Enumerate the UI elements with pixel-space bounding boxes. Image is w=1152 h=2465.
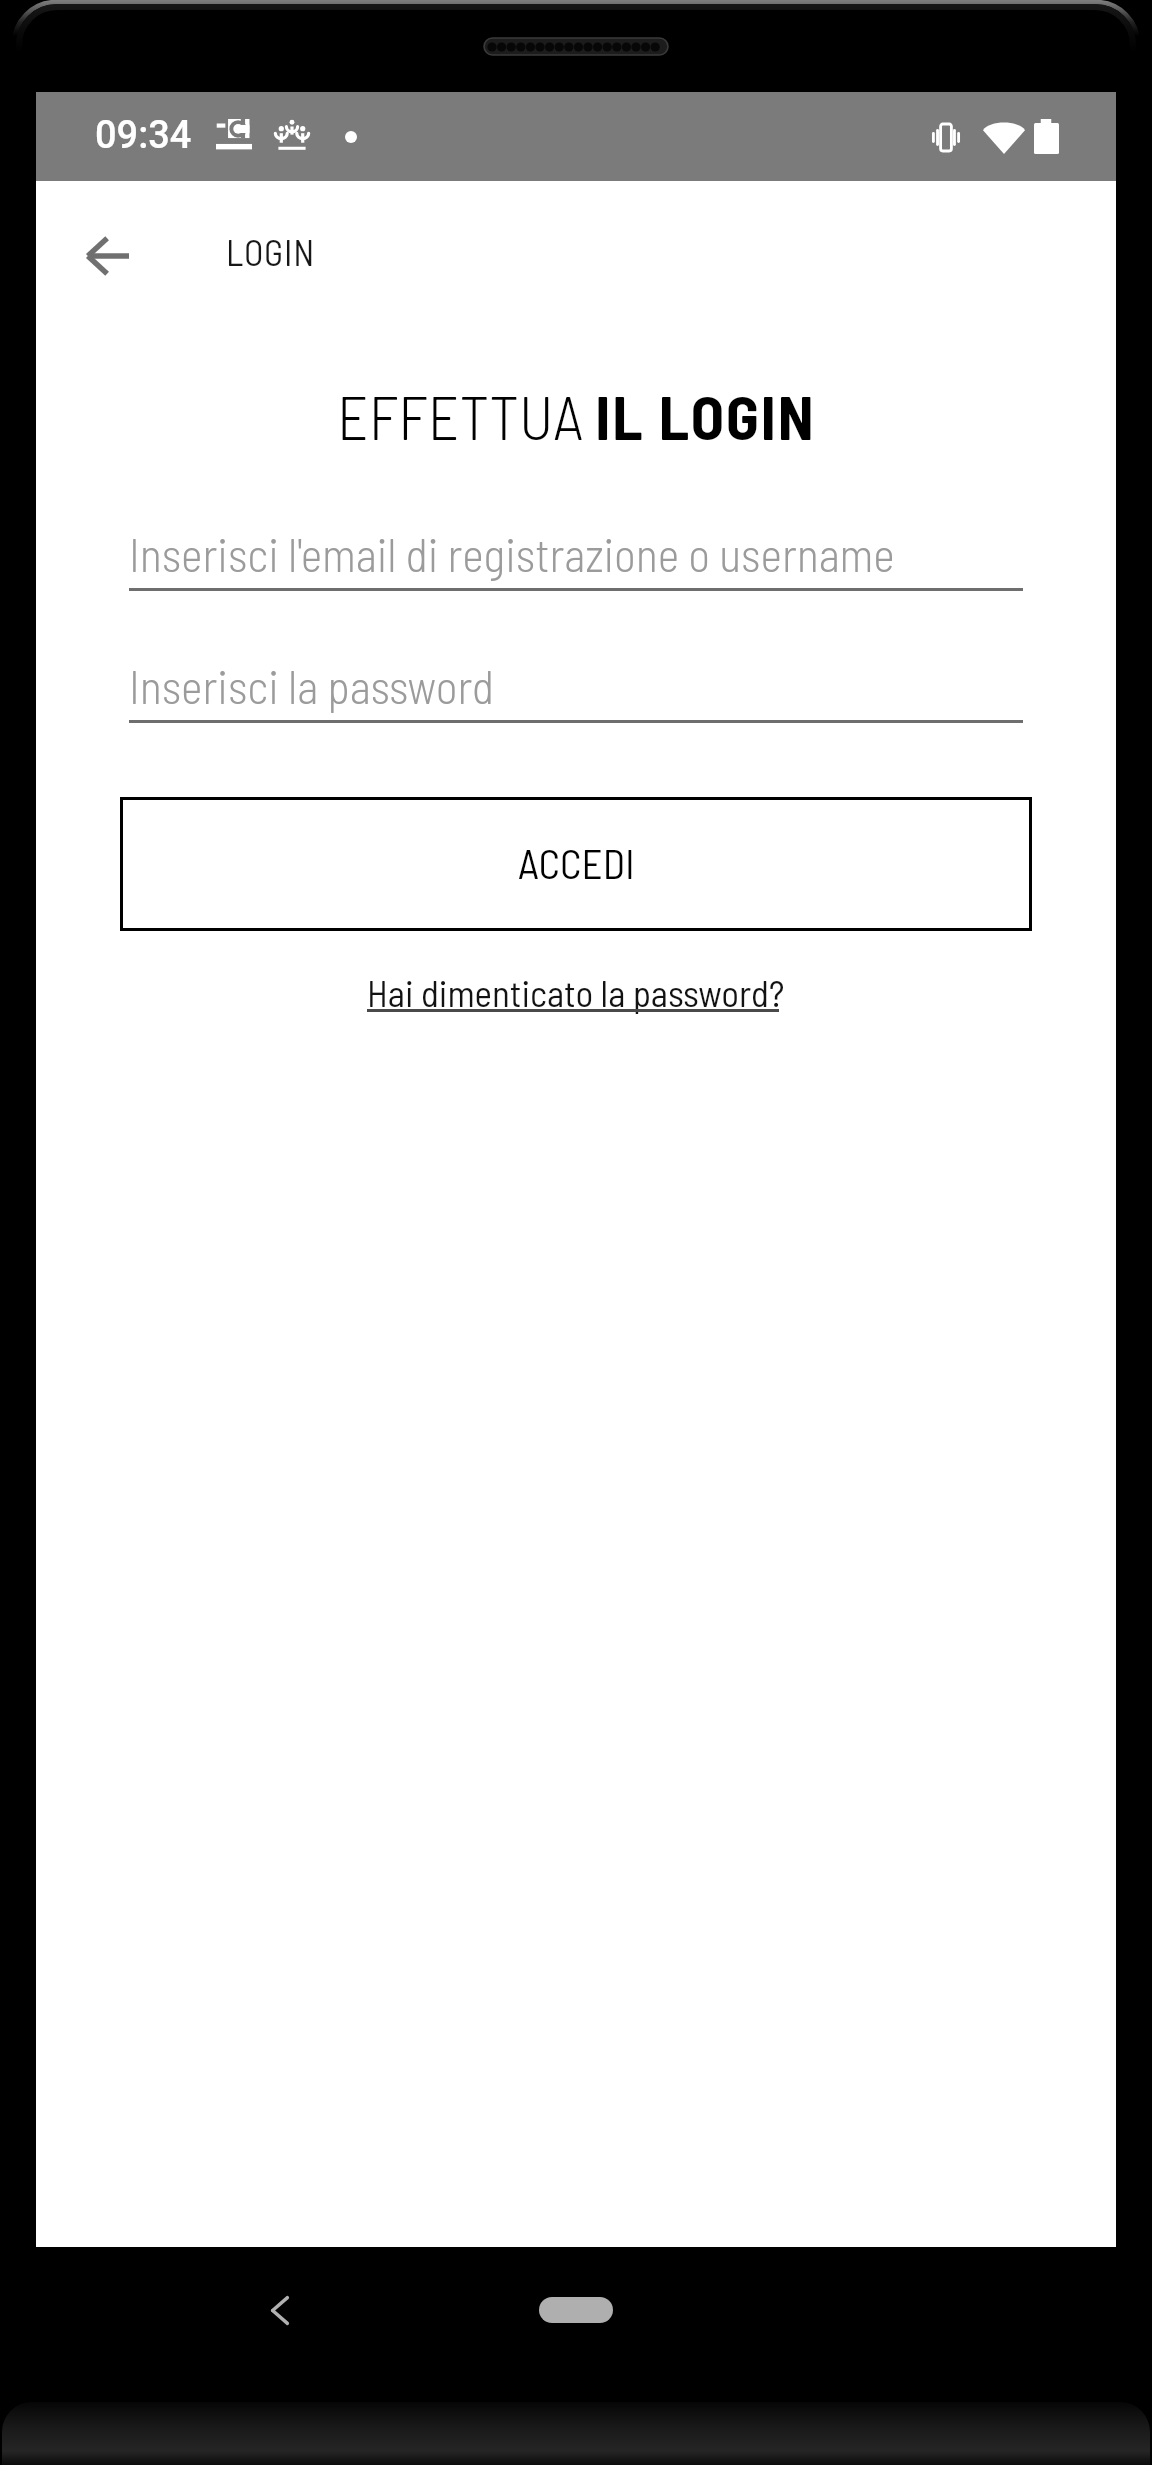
staticText: Inserisci l'email di registrazione o use… [129, 526, 895, 581]
staticText: EFFETTUA IL LOGIN [337, 379, 816, 452]
staticText: Hai dimenticato la password? [367, 970, 785, 1014]
button[interactable]: Back [240, 2270, 320, 2350]
button[interactable]: Back [70, 218, 146, 294]
button[interactable]: Inserisci la password [129, 658, 1023, 723]
staticText: ACCEDI [518, 838, 635, 887]
staticText: 09:34 [95, 113, 192, 158]
button[interactable]: Inserisci l'email di registrazione o use… [129, 526, 1023, 591]
button[interactable]: Hai dimenticato la password? [367, 970, 785, 1014]
staticText: LOGIN [226, 230, 315, 273]
button[interactable]: ACCEDI [123, 800, 1029, 928]
staticText: Inserisci la password [129, 658, 495, 713]
button[interactable]: Home [539, 2297, 613, 2323]
